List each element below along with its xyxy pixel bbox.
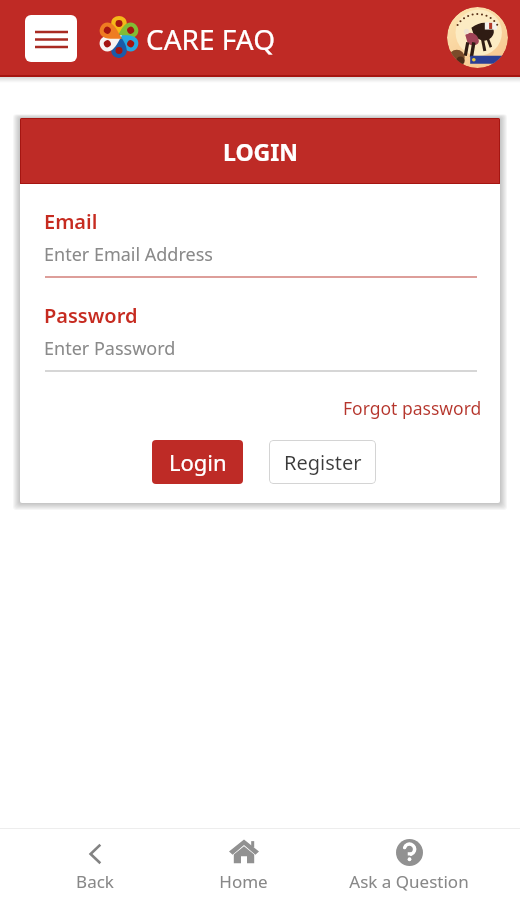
staticText: CARE FAQ	[146, 20, 276, 58]
staticText: Enter Password	[44, 336, 176, 361]
staticText: Back	[76, 870, 114, 893]
button[interactable]: Menu	[25, 15, 77, 62]
staticText: Email	[44, 208, 98, 235]
staticText: Password	[44, 302, 138, 329]
button[interactable]: Ask a Question	[298, 829, 520, 900]
staticText: Login	[169, 447, 227, 477]
button[interactable]: Login	[152, 440, 243, 484]
staticText: Ask a Question	[349, 870, 469, 893]
button[interactable]: Back	[0, 829, 189, 900]
staticText: Enter Email Address	[44, 242, 213, 267]
button[interactable]: Home	[189, 829, 298, 900]
staticText: LOGIN	[223, 136, 298, 167]
button[interactable]: Forgot password	[343, 396, 482, 420]
staticText: Register	[284, 449, 362, 476]
staticText: Home	[219, 870, 268, 893]
button[interactable]: Register	[269, 440, 376, 484]
button[interactable]: Profile	[447, 7, 508, 68]
